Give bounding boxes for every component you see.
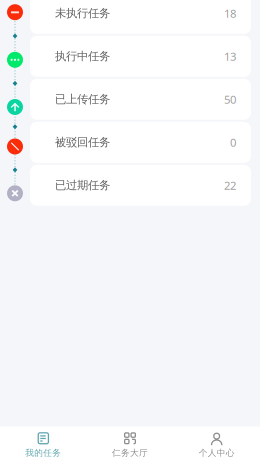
staticText: 已过期任务 [55, 178, 110, 192]
staticText: 50 [224, 92, 236, 107]
staticText: 13 [224, 49, 236, 64]
button[interactable]: 执行中任务 [30, 36, 251, 77]
staticText: 18 [224, 6, 236, 21]
button[interactable]: 已上传任务 [30, 79, 251, 120]
staticText: 0 [230, 135, 236, 150]
staticText: 仁务大厅 [112, 447, 148, 458]
staticText: 已上传任务 [55, 92, 110, 106]
button[interactable]: 仁务大厅 [87, 425, 173, 462]
button[interactable]: 我的任务 [0, 425, 87, 462]
button[interactable]: 被驳回任务 [30, 122, 251, 163]
staticText: 22 [224, 178, 236, 193]
staticText: 被驳回任务 [55, 135, 110, 149]
button[interactable]: 已过期任务 [30, 165, 251, 206]
button[interactable]: 个人中心 [173, 425, 260, 462]
staticText: 未执行任务 [55, 6, 110, 20]
button[interactable]: 未执行任务 [30, 0, 251, 34]
staticText: 我的任务 [25, 447, 61, 458]
staticText: 执行中任务 [55, 49, 110, 63]
staticText: 个人中心 [199, 447, 235, 458]
